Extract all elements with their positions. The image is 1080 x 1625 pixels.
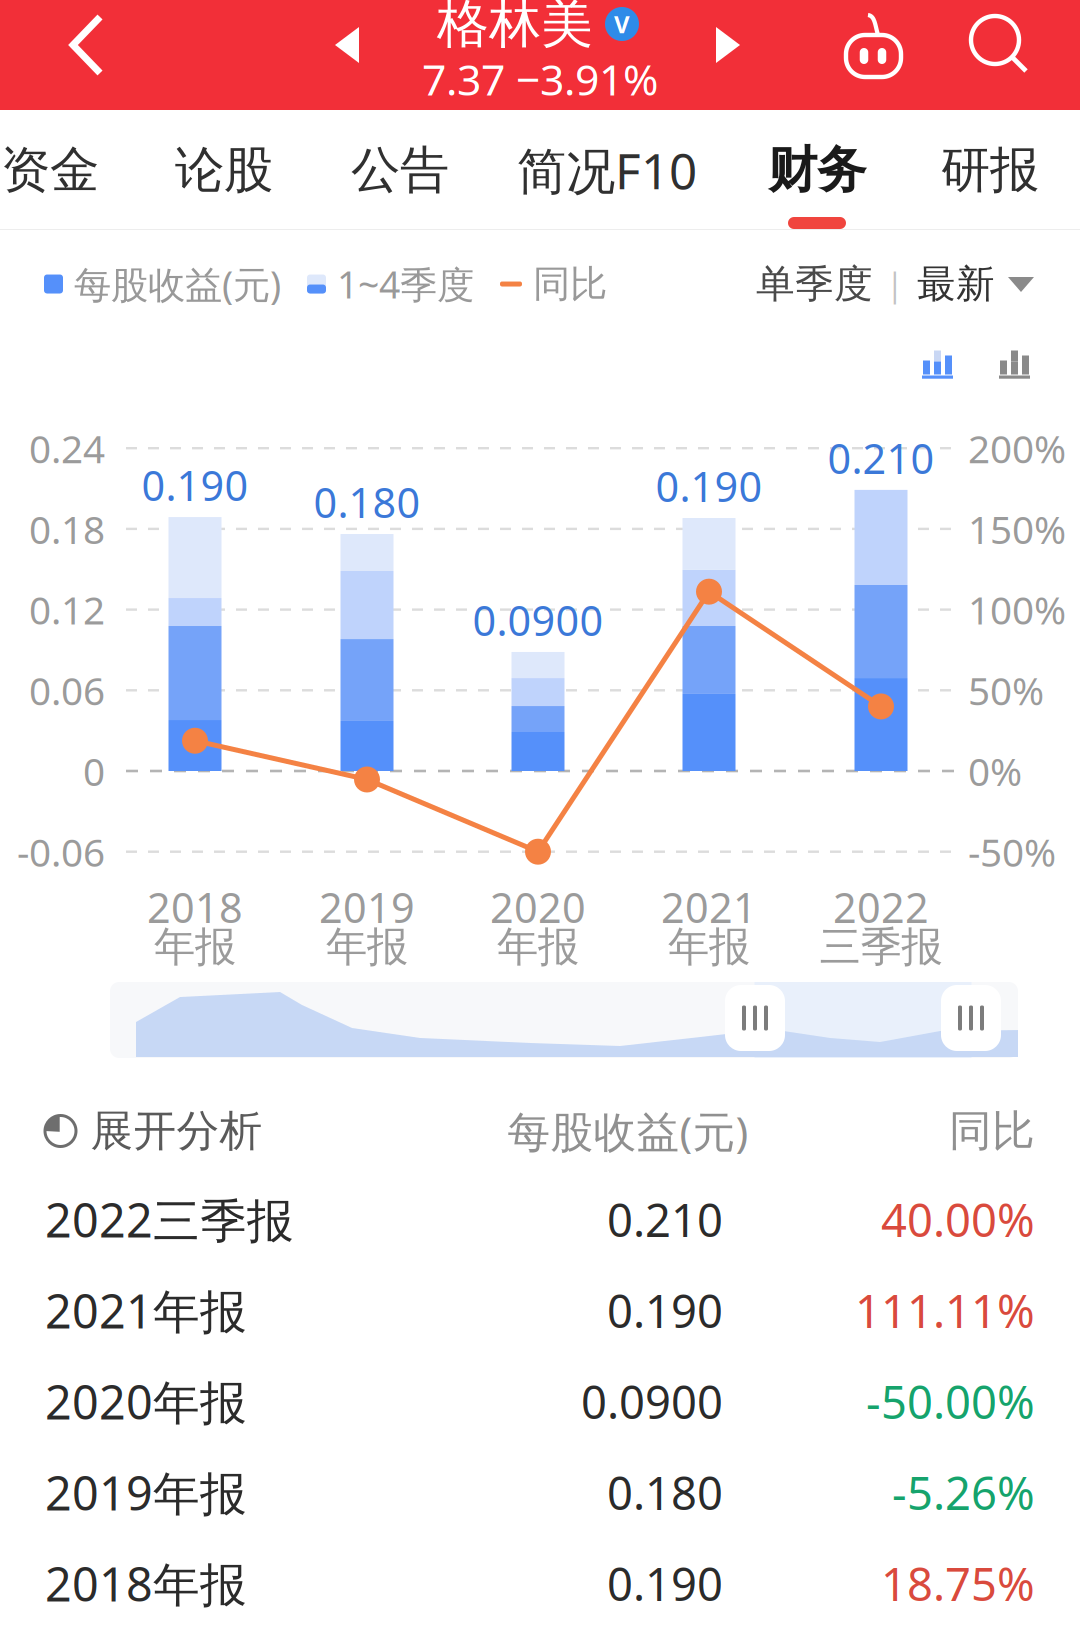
button[interactable]: 2022三季报 bbox=[0, 1174, 1080, 1265]
staticText: 0.190 bbox=[655, 459, 762, 513]
button[interactable]: 简况F10 bbox=[503, 117, 711, 223]
staticText: V bbox=[614, 8, 630, 40]
button[interactable]: 资金 bbox=[0, 120, 113, 220]
staticText: | bbox=[886, 263, 904, 305]
staticText: 1~4季度 bbox=[337, 259, 474, 309]
staticText: 简况F10 bbox=[517, 137, 697, 203]
staticText: 论股 bbox=[175, 140, 273, 200]
staticText: 每股收益(元) bbox=[74, 259, 281, 309]
staticText: 0.190 bbox=[607, 1280, 723, 1341]
button[interactable]: Stacked bar chart bbox=[908, 335, 968, 394]
button[interactable]: Range handle bbox=[725, 985, 785, 1051]
staticText: 每股收益(元) bbox=[507, 1103, 748, 1159]
staticText: 最新 bbox=[917, 260, 995, 308]
staticText: 0.210 bbox=[827, 430, 934, 485]
staticText: -50.00% bbox=[866, 1371, 1035, 1432]
staticText: 2018 bbox=[147, 880, 243, 934]
staticText: 单季度 bbox=[756, 260, 873, 308]
button[interactable]: 展开分析 bbox=[43, 1091, 262, 1171]
staticText: 0.0900 bbox=[472, 592, 603, 647]
staticText: 三季报 bbox=[819, 922, 942, 972]
staticText: -0.06 bbox=[17, 826, 105, 877]
staticText: 同比 bbox=[949, 1105, 1035, 1157]
button[interactable]: Back bbox=[48, 0, 124, 97]
staticText: 2022 bbox=[833, 880, 929, 934]
staticText: 2021年报 bbox=[45, 1279, 247, 1341]
staticText: 0.180 bbox=[607, 1462, 723, 1523]
staticText: 展开分析 bbox=[90, 1105, 262, 1157]
staticText: 150% bbox=[968, 503, 1066, 554]
staticText: 资金 bbox=[1, 140, 99, 200]
staticText: 0% bbox=[968, 745, 1022, 797]
staticText: 同比 bbox=[533, 261, 607, 307]
staticText: 200% bbox=[968, 422, 1066, 474]
button[interactable]: 研报 bbox=[927, 120, 1053, 220]
staticText: 年报 bbox=[497, 922, 579, 972]
staticText: 18.75% bbox=[881, 1553, 1035, 1614]
staticText: 0.24 bbox=[29, 422, 105, 474]
button[interactable]: Next stock bbox=[692, 3, 764, 87]
button[interactable]: 单季度 bbox=[756, 252, 873, 316]
staticText: -50% bbox=[968, 826, 1056, 877]
staticText: 2020年报 bbox=[45, 1370, 247, 1432]
staticText: 0.06 bbox=[29, 665, 105, 716]
button[interactable]: 财务 bbox=[754, 120, 880, 220]
staticText: 0.0900 bbox=[581, 1371, 723, 1432]
staticText: 100% bbox=[968, 584, 1066, 635]
button[interactable]: 2020年报 bbox=[0, 1356, 1080, 1447]
staticText: 公告 bbox=[351, 140, 449, 200]
button[interactable]: Search bbox=[955, 0, 1043, 88]
staticText: 2022三季报 bbox=[45, 1188, 294, 1250]
button[interactable]: 2019年报 bbox=[0, 1447, 1080, 1538]
staticText: 0.12 bbox=[29, 584, 105, 635]
staticText: 40.00% bbox=[881, 1189, 1035, 1250]
staticText: 年报 bbox=[326, 922, 408, 972]
button[interactable]: Range handle bbox=[941, 985, 1001, 1051]
staticText: 2021 bbox=[661, 880, 757, 934]
button[interactable]: 论股 bbox=[161, 120, 287, 220]
staticText: 0 bbox=[83, 745, 105, 797]
staticText: 财务 bbox=[768, 140, 866, 200]
button[interactable]: Previous stock bbox=[311, 3, 383, 87]
staticText: 0.210 bbox=[607, 1189, 723, 1250]
staticText: 格林美 bbox=[437, 0, 593, 56]
staticText: 研报 bbox=[941, 140, 1039, 200]
staticText: 年报 bbox=[668, 922, 750, 972]
button[interactable]: 最新 bbox=[917, 252, 1032, 316]
staticText: 0.180 bbox=[313, 475, 420, 529]
staticText: 7.37 −3.91% bbox=[422, 51, 658, 107]
button[interactable]: 公告 bbox=[337, 120, 463, 220]
button[interactable]: 2021年报 bbox=[0, 1265, 1080, 1356]
staticText: 2019年报 bbox=[45, 1461, 247, 1523]
staticText: 年报 bbox=[154, 922, 236, 972]
staticText: 111.11% bbox=[855, 1280, 1035, 1341]
button[interactable]: Simple bar chart bbox=[985, 335, 1045, 394]
staticText: 2019 bbox=[319, 880, 415, 934]
button[interactable]: Assistant bbox=[835, 1, 913, 91]
staticText: 0.190 bbox=[607, 1553, 723, 1614]
staticText: 2020 bbox=[490, 880, 586, 934]
staticText: 0.190 bbox=[141, 458, 248, 512]
staticText: 0.18 bbox=[29, 503, 105, 554]
staticText: 50% bbox=[968, 665, 1044, 716]
staticText: -5.26% bbox=[892, 1462, 1035, 1523]
staticText: 2018年报 bbox=[45, 1552, 247, 1614]
button[interactable]: 2018年报 bbox=[0, 1538, 1080, 1625]
